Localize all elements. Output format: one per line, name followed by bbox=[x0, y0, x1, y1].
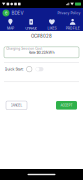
staticText: Privacy Policy bbox=[57, 11, 80, 15]
staticText: Quick Start: bbox=[4, 67, 23, 71]
button[interactable]: LIKES bbox=[41, 19, 62, 30]
staticText: MAP bbox=[7, 26, 14, 30]
button[interactable]: PROFILE bbox=[62, 19, 83, 30]
button[interactable]: CHARGE bbox=[21, 19, 42, 30]
staticText: Charging Session Cost bbox=[6, 47, 42, 50]
button[interactable]: MAP bbox=[0, 19, 21, 30]
staticText: BDEV bbox=[11, 10, 23, 16]
staticText: LIKES bbox=[47, 26, 56, 30]
staticText: ACCEPT bbox=[60, 103, 72, 107]
button[interactable]: Privacy Policy bbox=[57, 11, 80, 15]
button[interactable]: Quick Start toggle bbox=[35, 67, 43, 71]
button[interactable]: ACCEPT bbox=[56, 101, 77, 110]
staticText: CHARGE bbox=[25, 26, 37, 30]
staticText: OC#8028 bbox=[31, 33, 52, 39]
button[interactable]: CANCEL bbox=[6, 101, 27, 110]
staticText: PROFILE bbox=[66, 26, 80, 30]
staticText: e bbox=[5, 10, 7, 16]
staticText: Rate $0.22/kWh bbox=[28, 50, 54, 54]
staticText: CANCEL bbox=[10, 103, 22, 107]
